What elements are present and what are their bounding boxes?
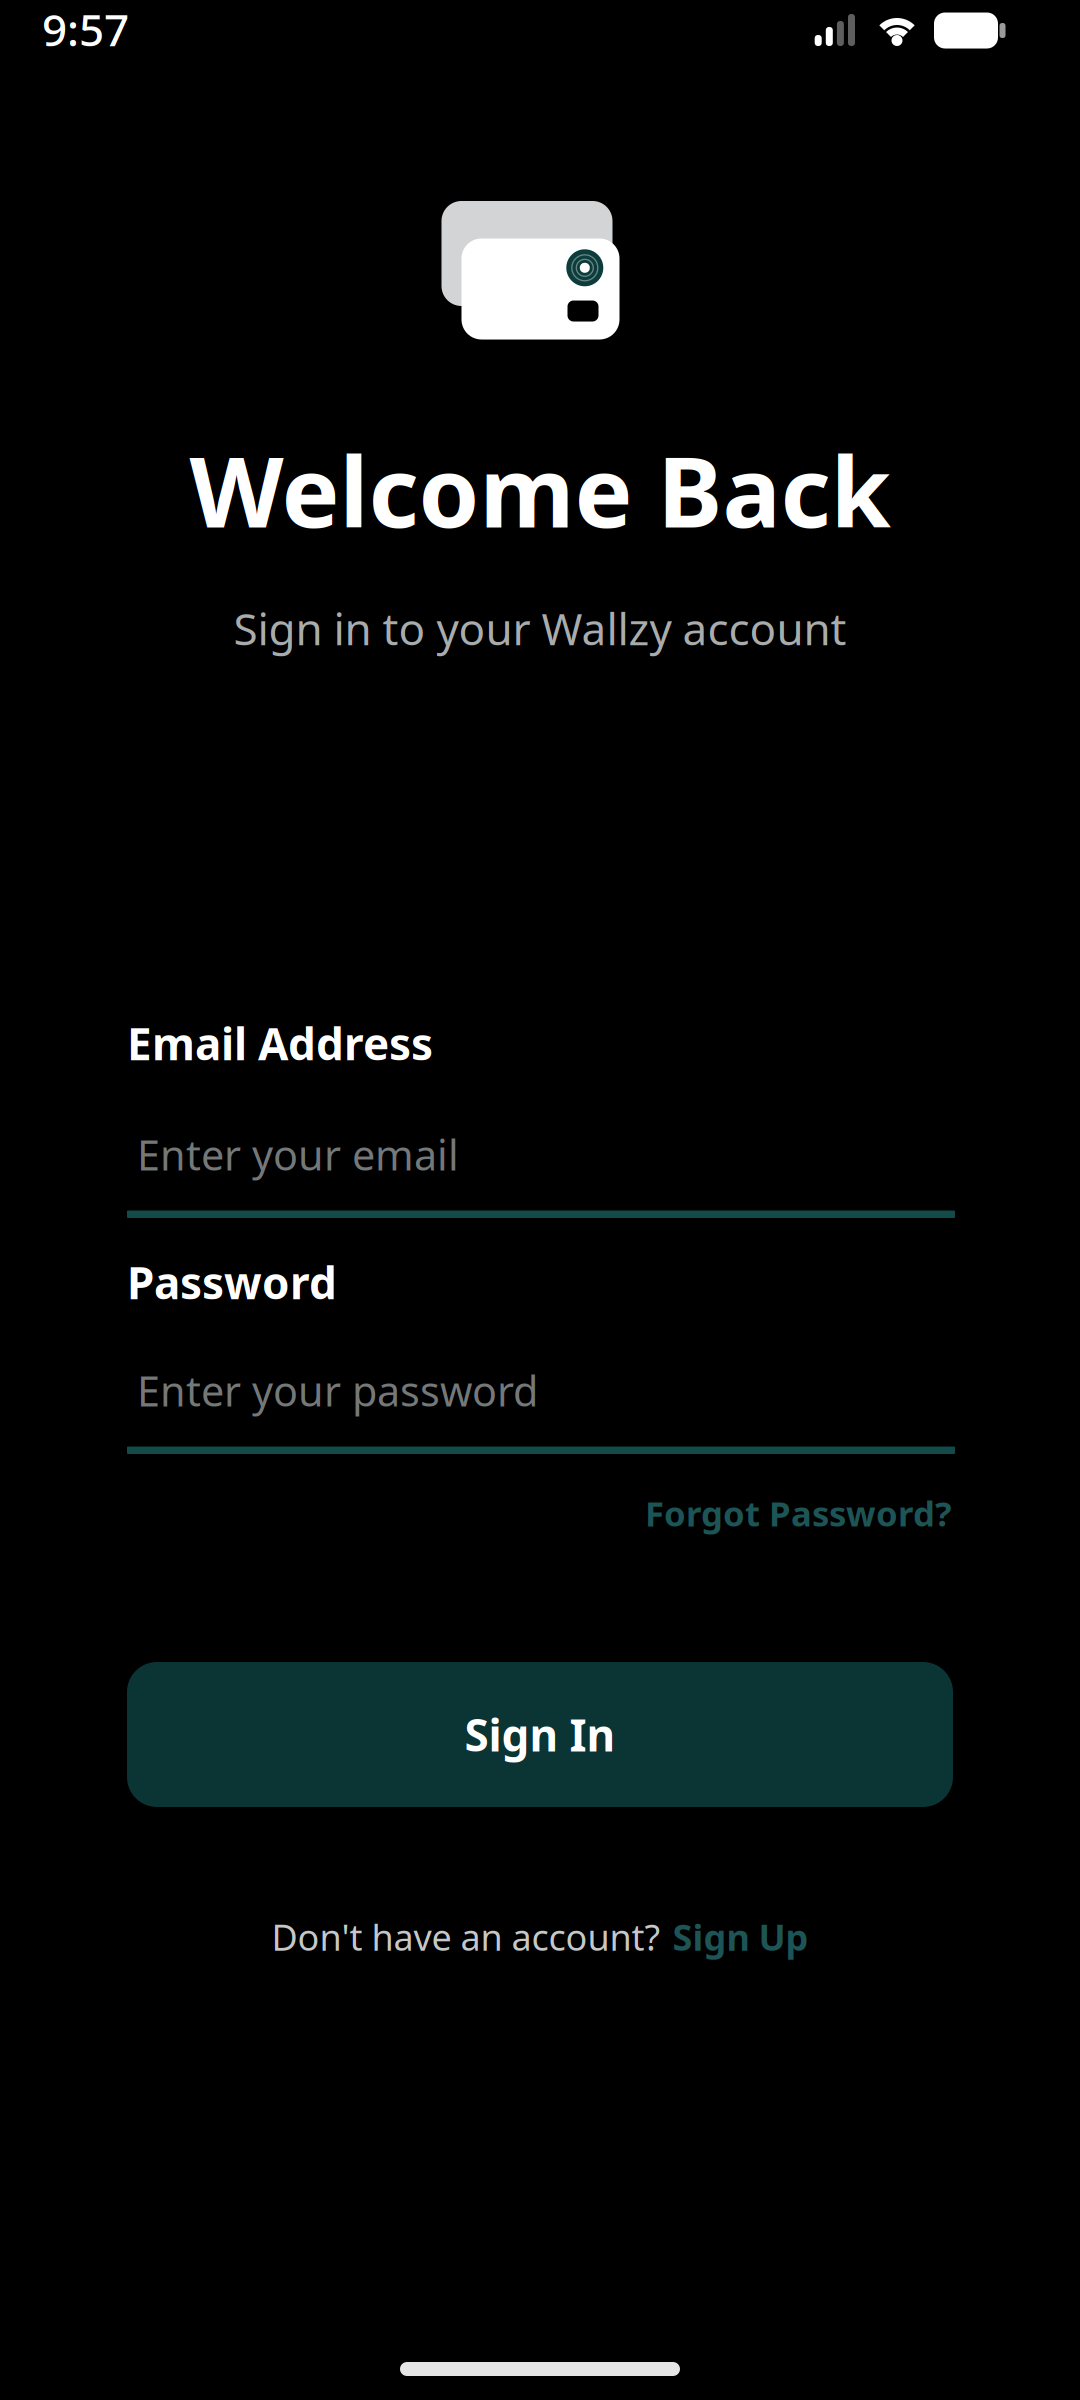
staticText: Welcome Back [189, 425, 890, 554]
staticText: Forgot Password? [645, 1490, 952, 1536]
staticText: 9:57 [42, 0, 129, 58]
button[interactable]: Sign In [127, 1662, 953, 1807]
staticText: Sign in to your Wallzy account [233, 599, 846, 657]
staticText: Don't have an account? [271, 1913, 660, 1961]
staticText: Sign In [464, 1705, 615, 1764]
button[interactable]: Enter your password [127, 1336, 955, 1454]
staticText: Enter your email [137, 1127, 459, 1182]
staticText: Email Address [127, 1014, 433, 1072]
button[interactable]: Forgot Password? [645, 1490, 952, 1536]
staticText: Enter your password [137, 1363, 538, 1418]
staticText: Password [127, 1253, 337, 1311]
button[interactable]: Enter your email [127, 1100, 955, 1218]
button[interactable]: Sign Up [672, 1913, 808, 1961]
staticText: Sign Up [672, 1913, 808, 1961]
